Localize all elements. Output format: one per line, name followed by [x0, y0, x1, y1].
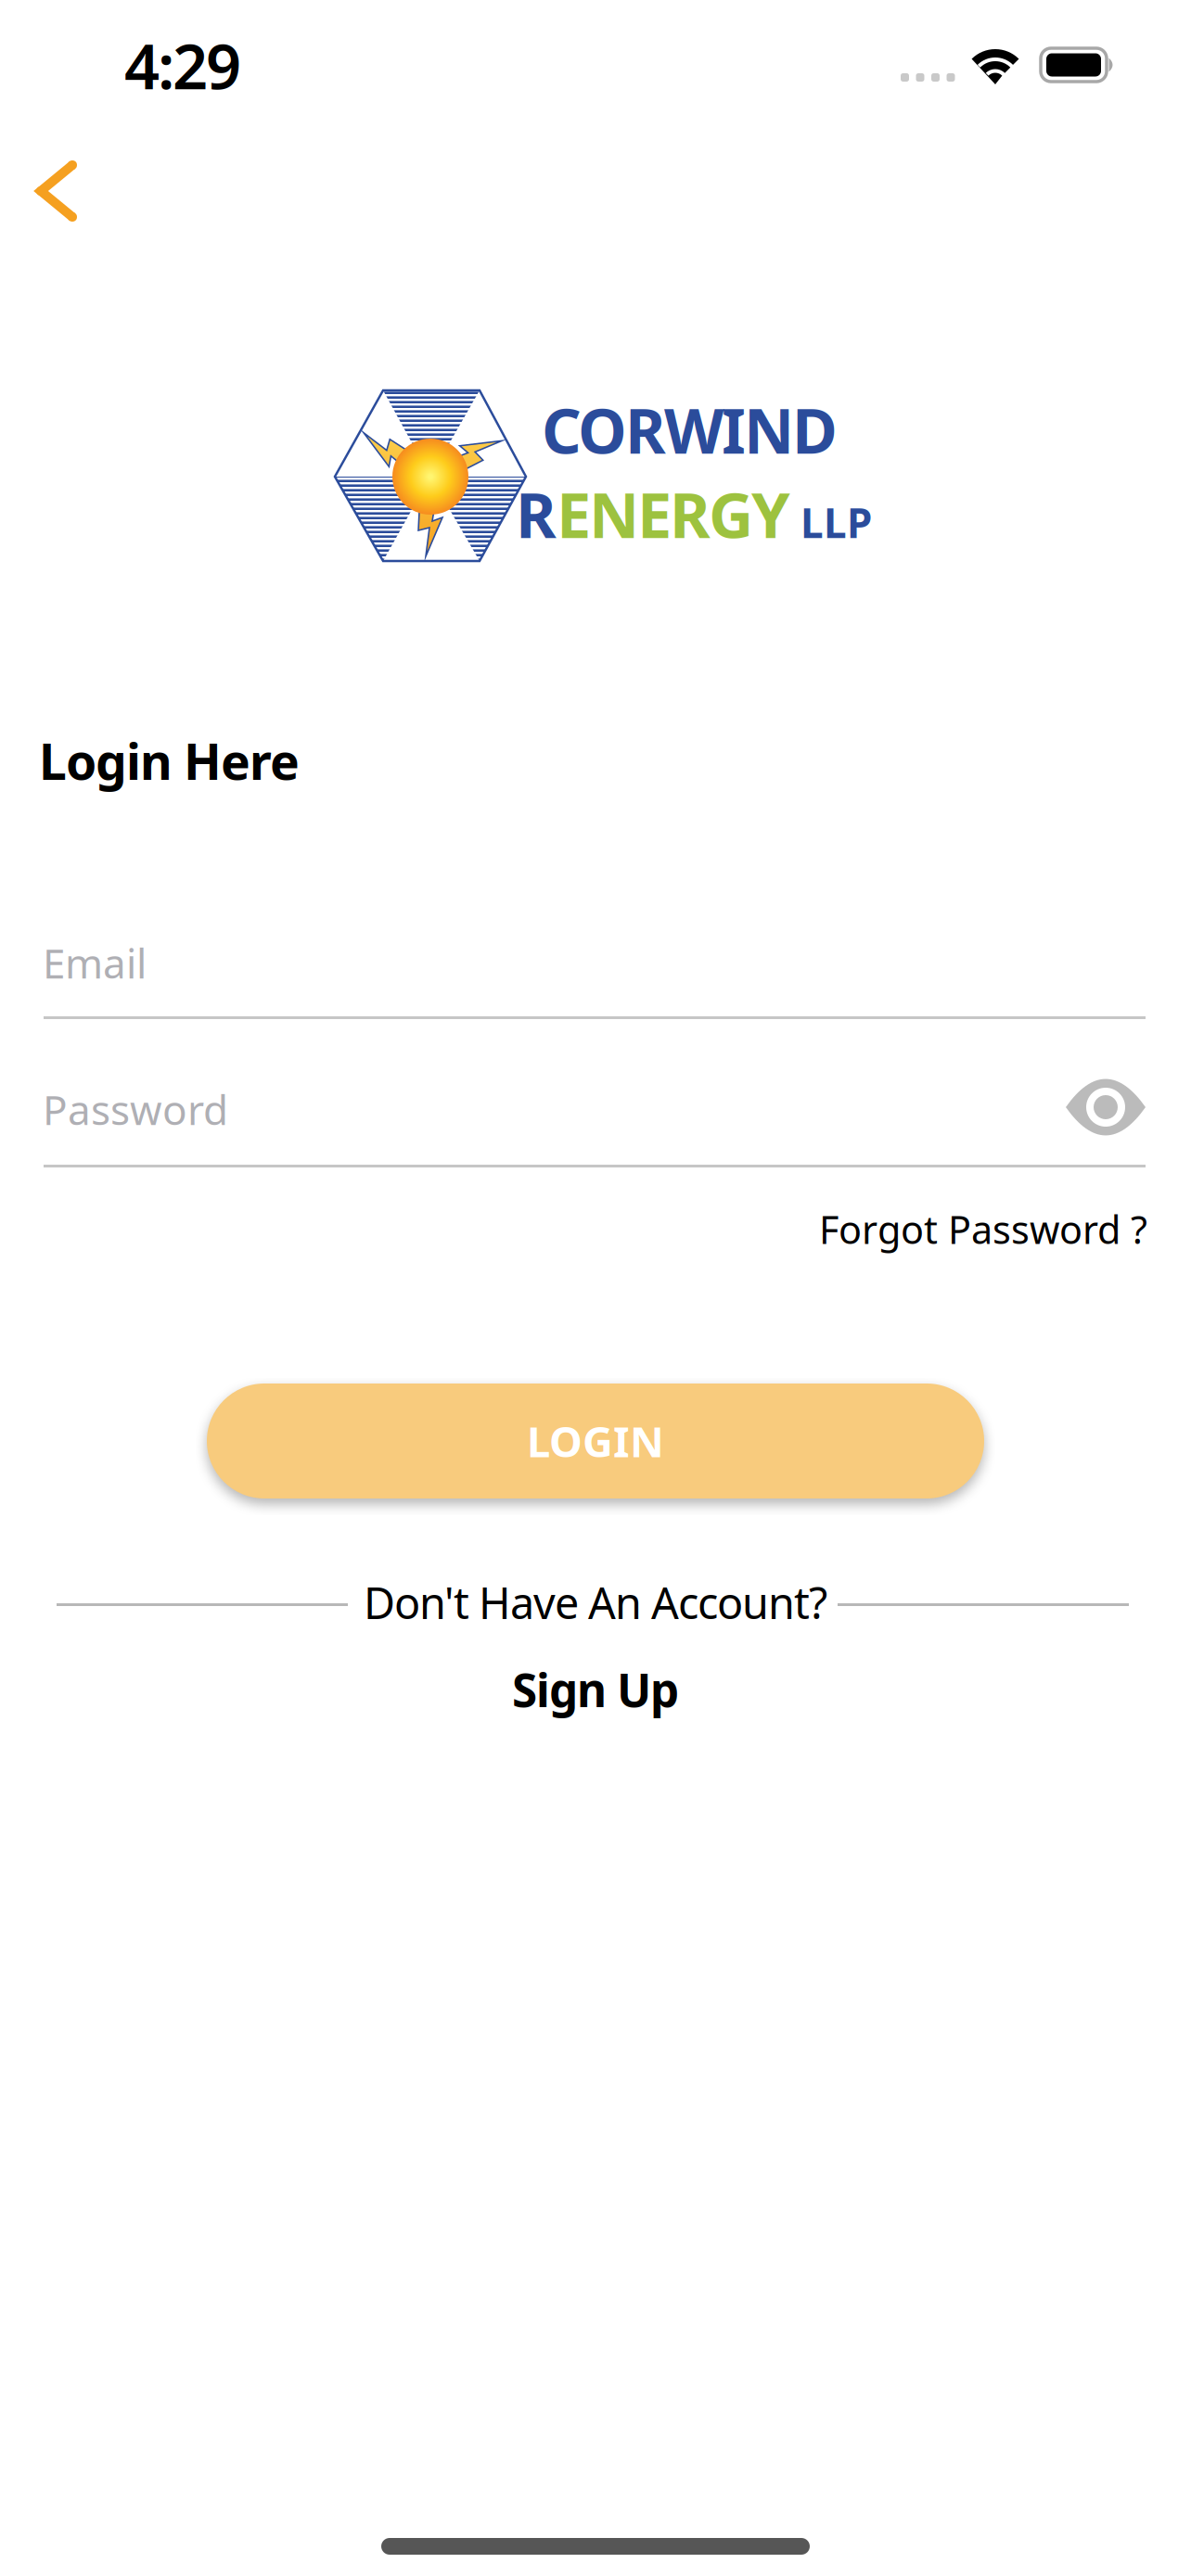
staticText: Password — [43, 1082, 228, 1136]
staticText: LLP — [790, 495, 872, 549]
staticText: LOGIN — [527, 1413, 664, 1469]
staticText: 4:29 — [124, 24, 241, 106]
staticText: Forgot Password ? — [819, 1204, 1147, 1255]
staticText: ENERGY — [557, 473, 790, 555]
button[interactable]: Sign Up — [503, 1650, 688, 1729]
staticText: CORWIND — [542, 389, 838, 471]
button[interactable]: LOGIN — [207, 1384, 984, 1498]
staticText: Don't Have An Account? — [364, 1574, 827, 1631]
button[interactable]: Back — [28, 152, 85, 230]
staticText: R — [516, 473, 557, 555]
button[interactable]: Forgot Password ? — [813, 1198, 1153, 1260]
button[interactable]: Show password — [1058, 1073, 1153, 1141]
staticText: Email — [43, 936, 147, 990]
staticText: Sign Up — [512, 1659, 679, 1720]
staticText: Login Here — [39, 728, 300, 794]
